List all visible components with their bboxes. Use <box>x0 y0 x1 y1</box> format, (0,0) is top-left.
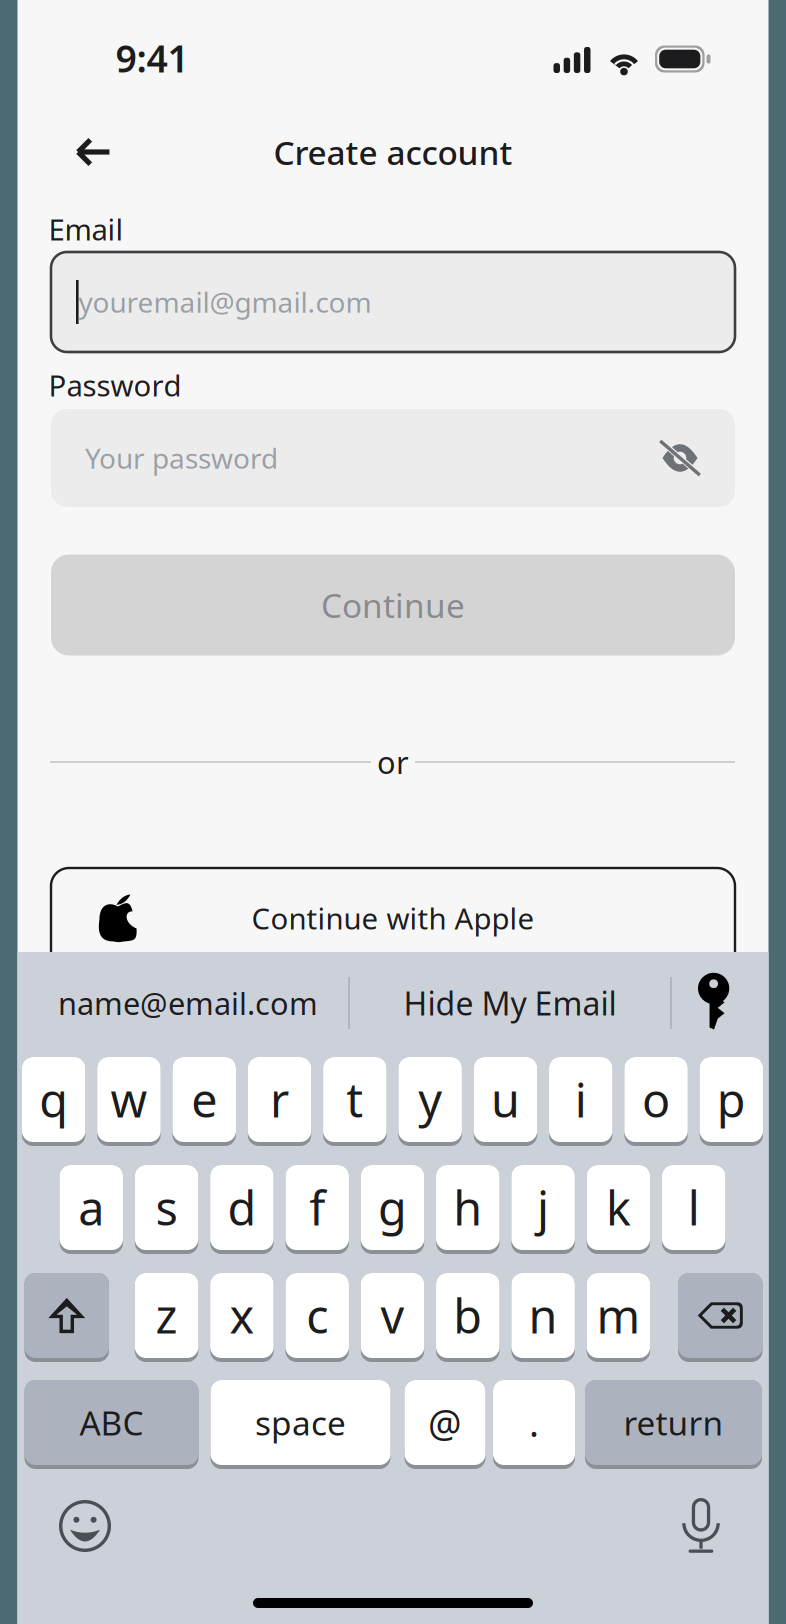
button[interactable]: Emoji <box>41 1482 129 1570</box>
button[interactable]: q <box>22 1057 85 1146</box>
staticText: o <box>642 1068 670 1130</box>
button[interactable]: g <box>361 1165 424 1254</box>
staticText: d <box>227 1176 256 1238</box>
staticText: Continue <box>321 583 465 627</box>
button[interactable]: Your password <box>51 409 735 507</box>
staticText: l <box>688 1176 700 1238</box>
staticText: ABC <box>79 1400 143 1445</box>
staticText: k <box>606 1176 631 1238</box>
staticText: e <box>191 1068 217 1130</box>
staticText: r <box>270 1068 289 1130</box>
button[interactable]: y <box>398 1057 462 1146</box>
button[interactable]: e <box>172 1057 236 1146</box>
button[interactable]: Delete <box>678 1273 762 1362</box>
staticText: v <box>380 1284 404 1346</box>
staticText: c <box>306 1284 328 1346</box>
button[interactable]: w <box>97 1057 161 1146</box>
staticText: q <box>39 1068 68 1130</box>
staticText: Email <box>48 209 123 248</box>
staticText: i <box>575 1068 587 1130</box>
button[interactable]: m <box>587 1273 650 1362</box>
staticText: x <box>229 1284 254 1346</box>
button[interactable]: Show password <box>646 424 714 492</box>
button[interactable]: Passwords <box>677 963 753 1043</box>
button[interactable]: s <box>135 1165 198 1254</box>
button[interactable]: p <box>700 1057 763 1146</box>
button[interactable]: . <box>493 1380 575 1469</box>
button[interactable]: Back <box>51 110 135 194</box>
button[interactable]: a <box>60 1165 123 1254</box>
button[interactable]: k <box>587 1165 650 1254</box>
staticText: y <box>418 1068 442 1130</box>
staticText: Hide My Email <box>403 982 616 1024</box>
staticText: t <box>346 1068 363 1130</box>
staticText: youremail@gmail.com <box>79 283 372 321</box>
staticText: space <box>255 1400 346 1445</box>
button[interactable]: x <box>210 1273 274 1362</box>
button[interactable]: j <box>511 1165 575 1254</box>
button[interactable]: Continue with Apple <box>51 868 735 1000</box>
staticText: z <box>156 1284 178 1346</box>
button[interactable]: Hide My Email <box>360 963 660 1043</box>
staticText: p <box>717 1068 746 1130</box>
staticText: u <box>491 1068 520 1130</box>
button[interactable]: o <box>624 1057 688 1146</box>
button[interactable]: z <box>135 1273 198 1362</box>
button[interactable]: v <box>361 1273 424 1362</box>
staticText: b <box>453 1284 482 1346</box>
button[interactable]: d <box>210 1165 274 1254</box>
button[interactable]: u <box>474 1057 537 1146</box>
button[interactable]: f <box>285 1165 349 1254</box>
staticText: s <box>156 1176 178 1238</box>
button[interactable]: ABC <box>24 1380 198 1469</box>
button[interactable]: t <box>323 1057 387 1146</box>
button[interactable]: l <box>662 1165 725 1254</box>
staticText: or <box>377 742 409 782</box>
button[interactable]: name@email.com <box>23 963 353 1043</box>
button[interactable]: space <box>210 1380 390 1469</box>
button[interactable]: return <box>585 1380 762 1469</box>
staticText: 9:41 <box>115 33 188 83</box>
staticText: g <box>378 1176 407 1238</box>
button[interactable]: Dictate <box>657 1482 745 1570</box>
button[interactable]: youremail@gmail.com <box>51 252 735 352</box>
button[interactable]: h <box>436 1165 500 1254</box>
staticText: @ <box>428 1398 462 1447</box>
staticText: Your password <box>85 439 278 477</box>
staticText: Continue with Apple <box>251 898 534 937</box>
staticText: name@email.com <box>58 983 318 1023</box>
staticText: h <box>453 1176 482 1238</box>
staticText: Create account <box>273 130 512 174</box>
button[interactable]: r <box>248 1057 311 1146</box>
staticText: m <box>596 1284 640 1346</box>
staticText: n <box>529 1284 558 1346</box>
button[interactable]: n <box>511 1273 575 1362</box>
button[interactable]: c <box>285 1273 349 1362</box>
staticText: Password <box>48 365 181 404</box>
button[interactable]: b <box>436 1273 500 1362</box>
staticText: a <box>78 1176 104 1238</box>
staticText: w <box>110 1068 147 1130</box>
button[interactable]: @ <box>404 1380 485 1469</box>
button[interactable]: i <box>549 1057 612 1146</box>
button[interactable]: Continue <box>51 554 735 655</box>
staticText: . <box>529 1398 539 1447</box>
staticText: f <box>309 1176 325 1238</box>
button[interactable]: Shift <box>24 1273 109 1362</box>
staticText: j <box>537 1176 549 1238</box>
staticText: return <box>623 1400 723 1445</box>
